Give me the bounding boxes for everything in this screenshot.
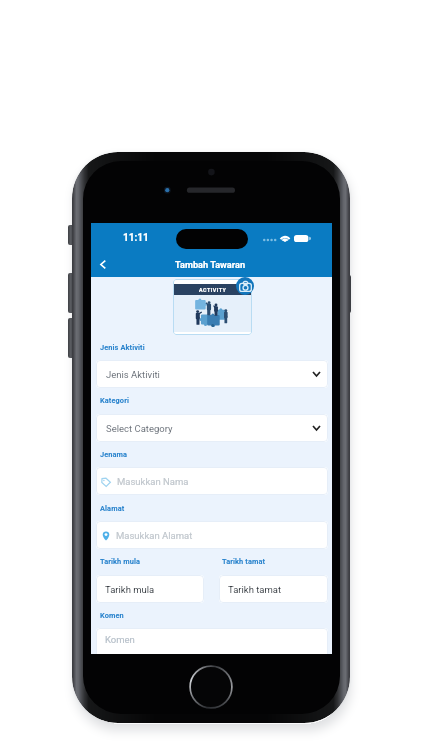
staticText: 11:11 (123, 232, 149, 244)
button[interactable]: Activity image (173, 279, 252, 335)
staticText: Tambah Tawaran (175, 259, 246, 270)
staticText: Masukkan Nama (117, 476, 189, 487)
button[interactable]: Back (91, 252, 115, 276)
staticText: Jenis Aktiviti (100, 343, 145, 352)
staticText: Komen (100, 611, 124, 620)
staticText: Tarikh tamat (228, 584, 282, 595)
staticText: Jenama (100, 450, 128, 459)
button[interactable]: Tarikh mula (96, 575, 204, 603)
staticText: Tarikh mula (105, 584, 155, 595)
staticText: Tarikh tamat (222, 557, 266, 566)
staticText: Select Category (106, 423, 173, 434)
staticText: Masukkan Alamat (116, 530, 193, 541)
staticText: Alamat (100, 504, 125, 513)
staticText: ACTIVITY (199, 287, 227, 293)
button[interactable]: Masukkan Alamat (96, 521, 328, 549)
staticText: Tarikh mula (100, 557, 141, 566)
button[interactable]: Tarikh tamat (219, 575, 328, 603)
staticText: Kategori (100, 396, 130, 405)
staticText: Jenis Aktiviti (106, 369, 160, 380)
staticText: Komen (105, 634, 135, 645)
button[interactable]: Masukkan Nama (96, 467, 328, 495)
button[interactable]: Select Category (96, 414, 328, 442)
button[interactable]: Jenis Aktiviti (96, 360, 328, 388)
button[interactable]: Take photo (236, 277, 254, 295)
button[interactable]: Komen (96, 628, 328, 654)
